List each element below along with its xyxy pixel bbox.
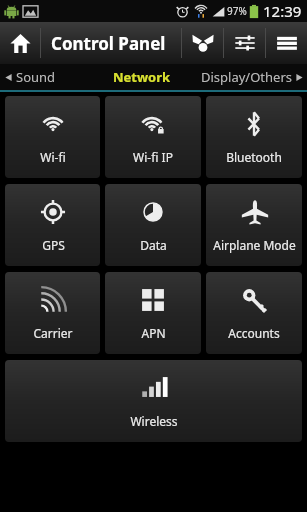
staticText: Wireless [130,413,178,429]
button[interactable]: Airplane Mode [206,184,302,266]
staticText: 12:39 [263,1,302,21]
button[interactable]: Wi-fi IP [105,96,201,178]
staticText: Carrier [33,325,73,341]
button[interactable]: Menu [266,22,307,64]
button[interactable]: Home [0,22,40,64]
staticText: Wi-fi IP [133,149,173,165]
button[interactable]: Wi-fi [5,96,100,178]
button[interactable]: Carrier [5,272,100,354]
staticText: Airplane Mode [213,237,296,253]
button[interactable]: Settings [224,22,265,64]
staticText: Wi-fi [40,149,66,165]
button[interactable]: Bluetooth [206,96,302,178]
staticText: Data [140,237,167,253]
button[interactable]: APN [105,272,201,354]
button[interactable]: Profiles [182,22,223,64]
staticText: Accounts [228,325,280,341]
button[interactable]: Data [105,184,201,266]
staticText: Network [113,68,171,86]
staticText: 97% [227,4,247,18]
button[interactable]: GPS [5,184,100,266]
button[interactable]: Network [96,64,187,90]
staticText: Bluetooth [226,149,282,165]
button[interactable]: Sound [0,64,96,90]
staticText: Display/Others [201,68,292,86]
button[interactable]: Wireless [5,360,302,442]
staticText: Control Panel [51,32,166,55]
staticText: Sound [16,68,56,86]
staticText: GPS [42,237,65,253]
button[interactable]: Display/Others [187,64,307,90]
button[interactable]: Accounts [206,272,302,354]
staticText: APN [141,325,166,341]
